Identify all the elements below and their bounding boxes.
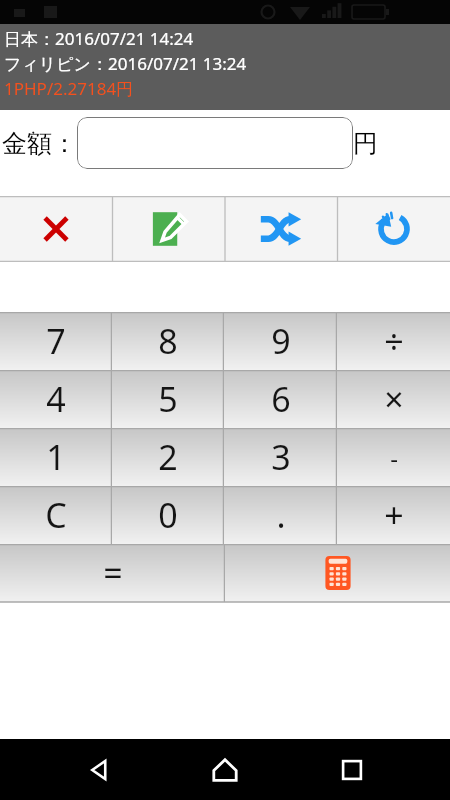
staticText: =	[103, 550, 123, 596]
button[interactable]: Home	[197, 742, 253, 798]
button[interactable]: ÷	[337, 312, 450, 370]
staticText: 円	[353, 128, 378, 159]
staticText: ×	[384, 376, 404, 422]
button[interactable]: 0	[112, 486, 224, 544]
button[interactable]: C	[0, 486, 112, 544]
button[interactable]: 2	[112, 428, 224, 486]
staticText: C	[45, 492, 67, 538]
button[interactable]: +	[337, 486, 450, 544]
button[interactable]: -	[337, 428, 450, 486]
staticText: 0	[158, 492, 178, 538]
staticText: 1	[46, 434, 66, 480]
button[interactable]: Amount input	[77, 117, 353, 169]
staticText: 1PHP/2.27184円	[4, 77, 134, 100]
button[interactable]: 5	[112, 370, 224, 428]
button[interactable]: 9	[224, 312, 337, 370]
button[interactable]: =	[0, 544, 225, 602]
button[interactable]: Open calculator	[225, 544, 450, 602]
staticText: 日本：2016/07/21 14:24	[4, 27, 194, 50]
staticText: 8	[158, 318, 178, 364]
staticText: 7	[46, 318, 66, 364]
button[interactable]: 6	[224, 370, 337, 428]
staticText: 4	[46, 376, 66, 422]
staticText: ÷	[384, 318, 404, 364]
button[interactable]: Edit memo	[112, 196, 224, 262]
button[interactable]: ×	[337, 370, 450, 428]
button[interactable]: Swap currencies	[224, 196, 337, 262]
button[interactable]: Back	[71, 742, 127, 798]
button[interactable]: .	[224, 486, 337, 544]
staticText: 9	[271, 318, 291, 364]
button[interactable]: Refresh rate	[337, 196, 450, 262]
staticText: 2	[158, 434, 178, 480]
staticText: 5	[158, 376, 178, 422]
button[interactable]: 3	[224, 428, 337, 486]
staticText: -	[390, 441, 398, 474]
staticText: 3	[271, 434, 291, 480]
staticText: 金額：	[2, 128, 77, 159]
button[interactable]: 7	[0, 312, 112, 370]
button[interactable]: Recent apps	[324, 742, 380, 798]
staticText: +	[384, 492, 404, 538]
button[interactable]: 4	[0, 370, 112, 428]
staticText: .	[276, 492, 286, 538]
button[interactable]: 8	[112, 312, 224, 370]
staticText: 6	[271, 376, 291, 422]
button[interactable]: 1	[0, 428, 112, 486]
staticText: フィリピン：2016/07/21 13:24	[4, 52, 247, 75]
button[interactable]: Clear	[0, 196, 112, 262]
